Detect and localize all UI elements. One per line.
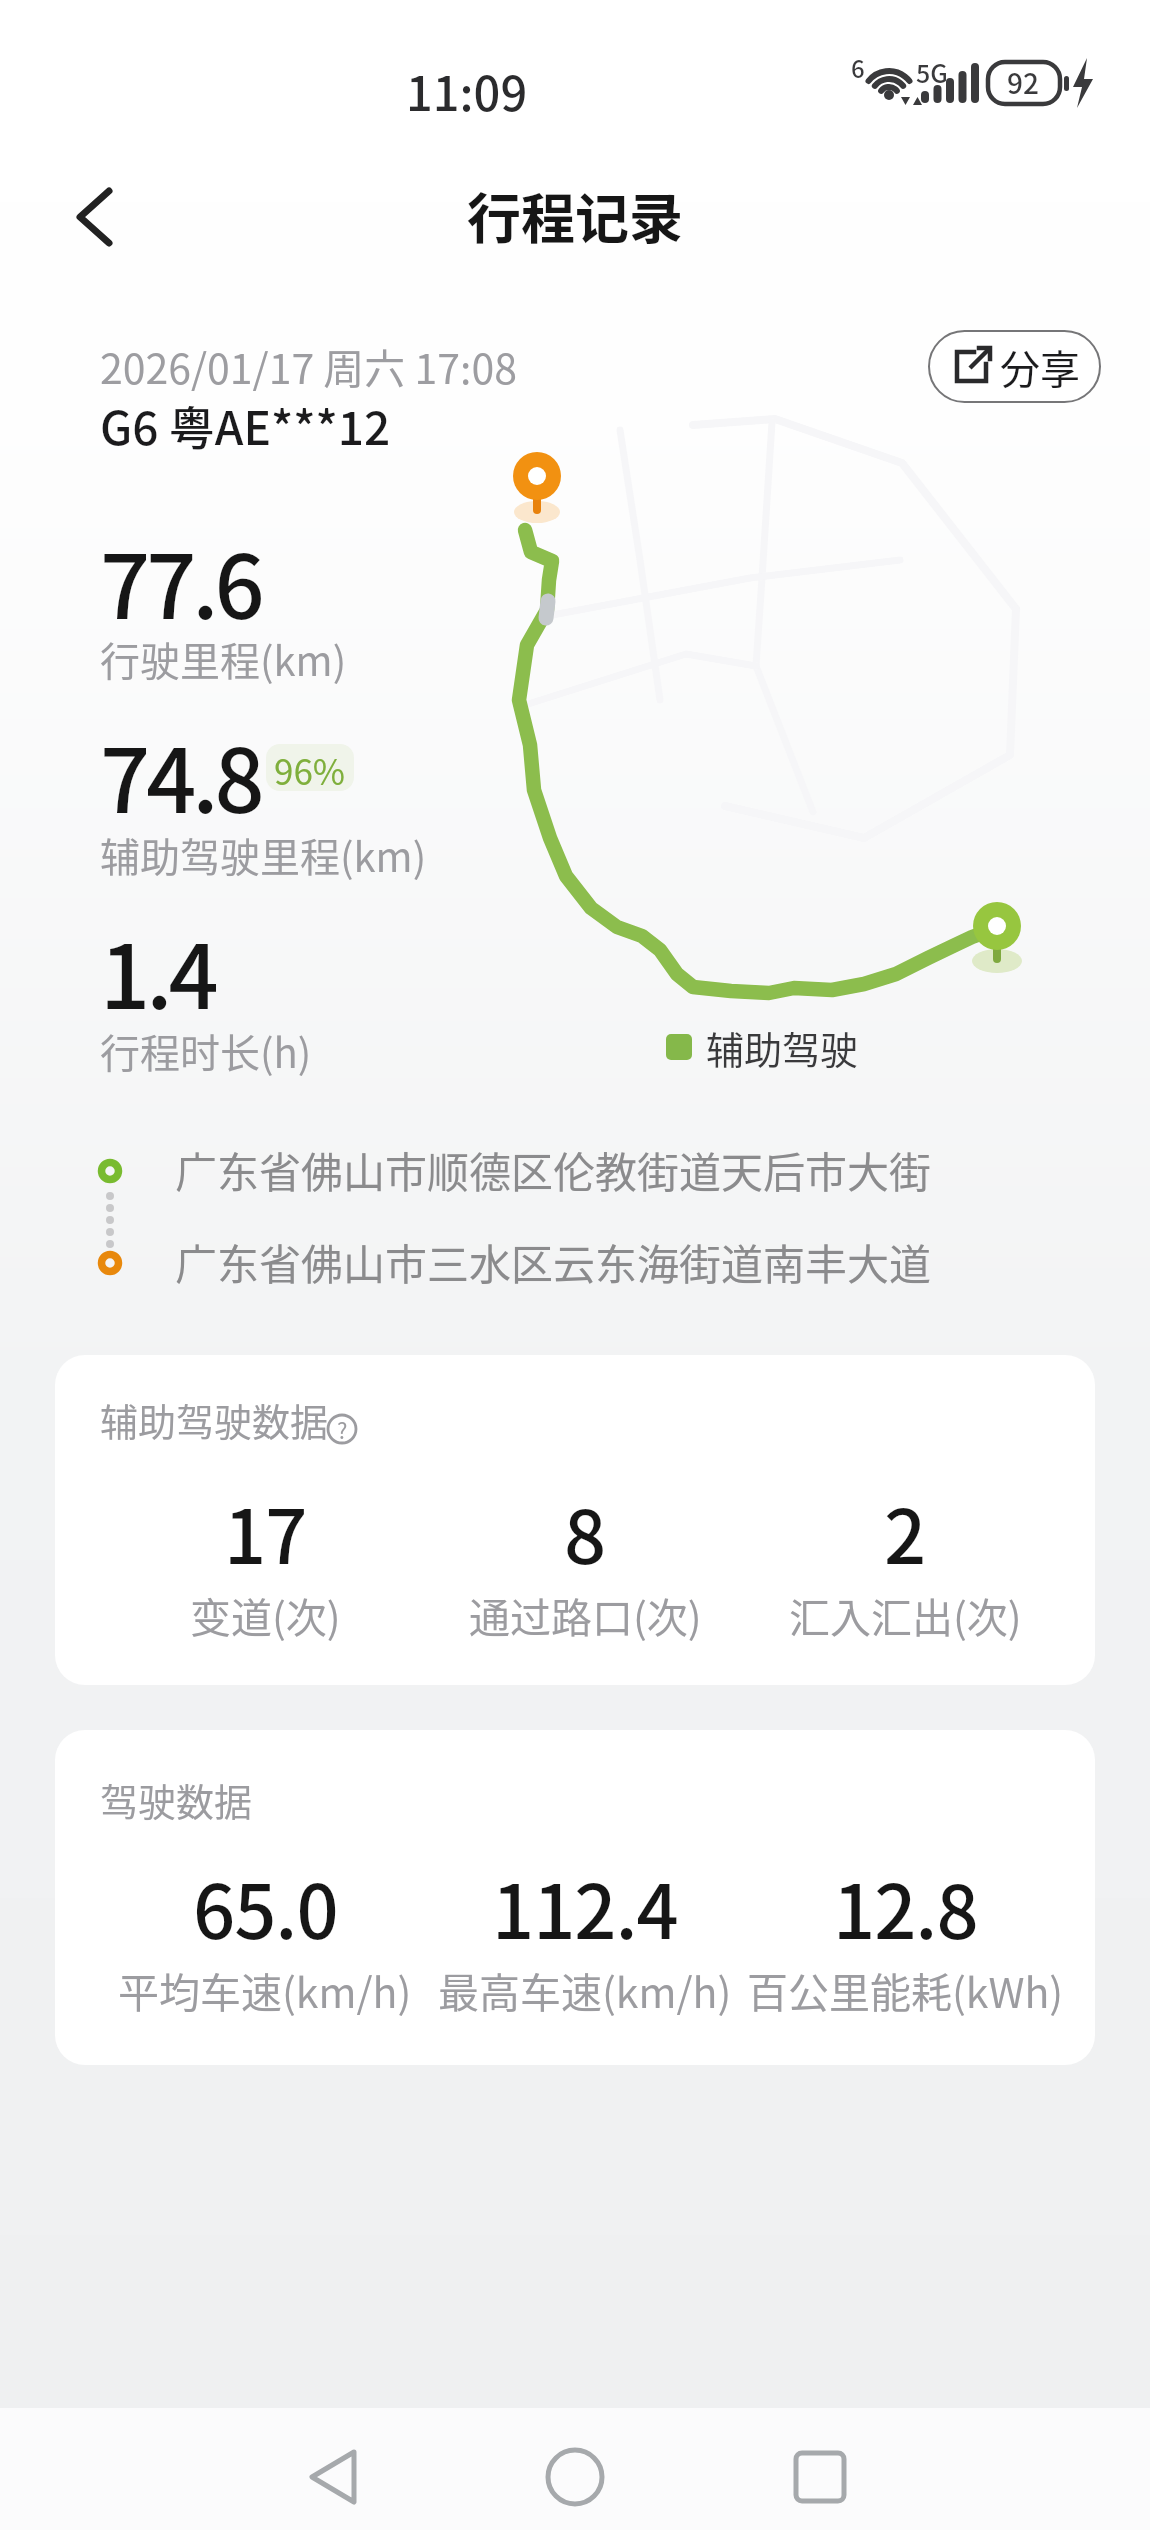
staticText: 百公里能耗(kWh)	[747, 1960, 1064, 2019]
staticText: 行程时长(h)	[100, 1022, 312, 1080]
staticText: 分享	[1000, 338, 1080, 396]
staticText: 汇入汇出(次)	[789, 1585, 1022, 1644]
button[interactable]: 分享	[928, 330, 1101, 403]
staticText: 驾驶数据	[100, 1772, 253, 1827]
staticText: ?	[337, 1413, 348, 1445]
staticText: 辅助驾驶	[706, 1020, 859, 1075]
button[interactable]	[60, 180, 135, 255]
staticText: 平均车速(km/h)	[118, 1960, 412, 2019]
staticText: 74.8	[100, 711, 261, 838]
staticText: 行驶里程(km)	[100, 630, 347, 688]
staticText: 辅助驾驶里程(km)	[100, 826, 427, 884]
staticText: 77.6	[100, 517, 261, 644]
staticText: 广东省佛山市三水区云东海街道南丰大道	[175, 1231, 932, 1292]
staticText: 6	[851, 50, 865, 85]
staticText: 17	[224, 1478, 307, 1574]
staticText: 65.0	[193, 1853, 338, 1949]
button[interactable]	[525, 2420, 625, 2520]
staticText: 96%	[274, 744, 346, 791]
staticText: 1.4	[100, 907, 215, 1034]
staticText: 广东省佛山市顺德区伦教街道天后市大街	[175, 1139, 932, 1200]
staticText: 2026/01/17 周六 17:08	[100, 336, 517, 395]
button[interactable]: ?	[326, 1413, 358, 1445]
staticText: G6 粤AE***12	[100, 392, 391, 459]
staticText: 辅助驾驶数据	[100, 1392, 329, 1447]
staticText: 变道(次)	[190, 1585, 341, 1644]
staticText: 11:09	[406, 56, 528, 124]
staticText: 92	[1007, 62, 1039, 103]
staticText: 12.8	[833, 1853, 978, 1949]
staticText: 行程记录	[467, 176, 683, 254]
staticText: 2	[884, 1478, 926, 1574]
staticText: 通过路口(次)	[469, 1585, 702, 1644]
staticText: 8	[564, 1478, 606, 1574]
staticText: 5G	[916, 54, 948, 90]
staticText: 112.4	[492, 1853, 678, 1949]
staticText: 最高车速(km/h)	[438, 1960, 732, 2019]
